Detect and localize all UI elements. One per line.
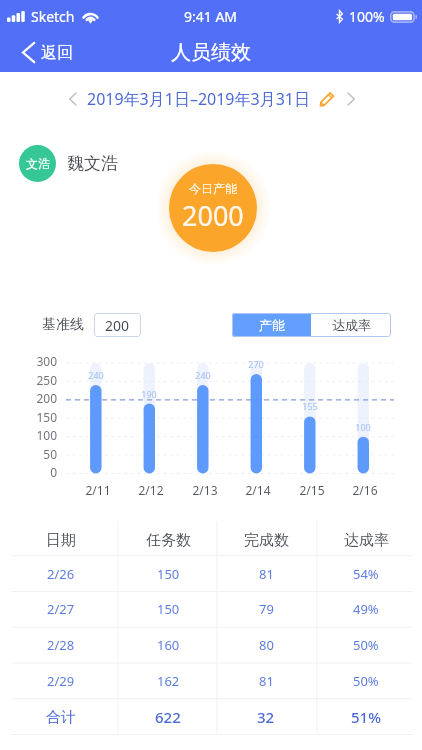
staticText: Sketch [31, 7, 75, 26]
staticText: 2/26 [47, 565, 75, 583]
staticText: 80 [259, 636, 274, 654]
staticText: 100 [343, 421, 383, 433]
staticText: 达成率 [332, 317, 371, 333]
staticText: 162 [157, 672, 180, 690]
staticText: 50 [20, 446, 57, 462]
staticText: 达成率 [344, 531, 389, 550]
staticText: 81 [259, 672, 274, 690]
staticText: 100% [349, 7, 385, 26]
button[interactable]: 81 [222, 671, 310, 691]
staticText: 2000 [182, 197, 244, 234]
button[interactable]: 79 [222, 599, 310, 619]
staticText: 270 [236, 358, 276, 370]
button[interactable]: 2/26 [17, 564, 105, 584]
button[interactable]: Next period [340, 88, 362, 110]
button[interactable]: 今日产能 [169, 164, 257, 252]
staticText: 250 [20, 372, 57, 388]
button[interactable]: 150 [124, 599, 212, 619]
staticText: 2/15 [290, 482, 334, 498]
staticText: 2/28 [47, 636, 75, 654]
button[interactable]: 32 [222, 706, 310, 728]
button[interactable]: 80 [222, 635, 310, 655]
button[interactable]: 完成数 [222, 529, 310, 551]
button[interactable]: 2/29 [17, 671, 105, 691]
staticText: 人员绩效 [171, 40, 251, 65]
staticText: 49% [353, 600, 379, 618]
button[interactable]: Previous period [61, 88, 83, 110]
staticText: 完成数 [244, 531, 289, 550]
staticText: 合计 [46, 708, 76, 727]
staticText: 200 [20, 390, 57, 406]
staticText: 2/13 [183, 482, 227, 498]
button[interactable]: 49% [322, 599, 410, 619]
staticText: 基准线 [42, 316, 84, 334]
button[interactable]: 50% [322, 671, 410, 691]
button[interactable]: 50% [322, 635, 410, 655]
staticText: 155 [290, 400, 330, 412]
staticText: 32 [257, 707, 275, 727]
staticText: 今日产能 [189, 181, 237, 196]
staticText: 100 [20, 427, 57, 443]
button[interactable]: 文浩 [19, 145, 56, 182]
staticText: 魏文浩 [67, 153, 118, 174]
button[interactable]: 622 [124, 706, 212, 728]
staticText: 日期 [46, 531, 76, 550]
button[interactable]: 200 [94, 313, 141, 337]
staticText: 622 [155, 707, 181, 727]
staticText: 0 [20, 464, 57, 480]
staticText: 2/16 [343, 482, 387, 498]
staticText: 2/29 [47, 672, 75, 690]
button[interactable]: 产能 [232, 313, 311, 337]
staticText: 150 [157, 565, 180, 583]
staticText: 79 [259, 600, 274, 618]
staticText: 150 [157, 600, 180, 618]
button[interactable]: 51% [322, 706, 410, 728]
button[interactable]: 日期 [17, 529, 105, 551]
staticText: 240 [183, 369, 223, 381]
staticText: 300 [20, 353, 57, 369]
button[interactable]: 2/28 [17, 635, 105, 655]
staticText: 240 [76, 369, 116, 381]
staticText: 190 [129, 388, 169, 400]
staticText: 文浩 [26, 156, 50, 171]
staticText: 任务数 [146, 531, 191, 550]
button[interactable]: 150 [124, 564, 212, 584]
staticText: 150 [20, 409, 57, 425]
staticText: 2/27 [47, 600, 75, 618]
staticText: 51% [351, 707, 381, 727]
staticText: 2/11 [76, 482, 120, 498]
staticText: 50% [353, 636, 379, 654]
button[interactable]: 162 [124, 671, 212, 691]
staticText: 50% [353, 672, 379, 690]
button[interactable]: 160 [124, 635, 212, 655]
staticText: 54% [353, 565, 379, 583]
staticText: 81 [259, 565, 274, 583]
button[interactable]: 合计 [17, 706, 105, 728]
button[interactable]: 达成率 [311, 313, 391, 337]
button[interactable]: Edit date range [318, 90, 336, 108]
staticText: 返回 [41, 43, 73, 63]
staticText: 2/12 [129, 482, 173, 498]
staticText: 160 [157, 636, 180, 654]
button[interactable]: 达成率 [322, 529, 410, 551]
button[interactable]: 2/27 [17, 599, 105, 619]
staticText: 2/14 [236, 482, 280, 498]
staticText: 产能 [259, 317, 285, 333]
button[interactable]: 54% [322, 564, 410, 584]
staticText: 2019年3月1日–2019年3月31日 [87, 88, 310, 110]
staticText: 200 [105, 316, 130, 335]
button[interactable]: 返回 [0, 34, 87, 71]
button[interactable]: 任务数 [124, 529, 212, 551]
staticText: 9:41 AM [184, 7, 238, 26]
button[interactable]: 81 [222, 564, 310, 584]
